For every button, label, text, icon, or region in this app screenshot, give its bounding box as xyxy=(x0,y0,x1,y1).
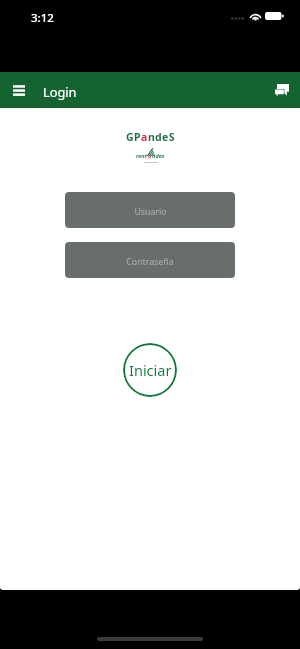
staticText: Login xyxy=(43,83,77,100)
staticText: Contraseña xyxy=(126,256,174,268)
staticText: Iniciar xyxy=(129,360,172,380)
staticText: rent xyxy=(136,152,148,160)
staticText: ndeS xyxy=(148,130,175,144)
staticText: Usuario xyxy=(134,206,167,218)
button[interactable]: Iniciar xyxy=(123,343,177,397)
button[interactable]: Usuario xyxy=(65,192,235,228)
staticText: GP xyxy=(126,130,141,144)
button[interactable]: Contraseña xyxy=(65,242,235,278)
staticText: a xyxy=(148,152,152,160)
staticText: a xyxy=(141,130,148,144)
staticText: ndes xyxy=(152,152,165,160)
button[interactable]: Menu xyxy=(7,78,31,102)
staticText: 3:12 xyxy=(31,10,54,26)
button[interactable]: Messages xyxy=(270,78,294,102)
